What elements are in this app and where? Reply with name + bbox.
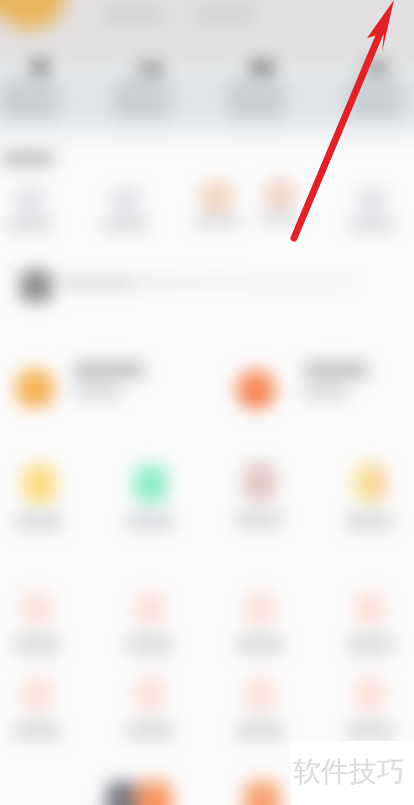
button[interactable]: Item bbox=[135, 590, 165, 625]
staticText: 软件技巧 bbox=[293, 754, 405, 789]
button[interactable]: App 4 bbox=[353, 464, 386, 502]
button[interactable]: Item bbox=[244, 780, 280, 805]
button[interactable]: App 1 bbox=[23, 464, 56, 502]
button[interactable]: App 3 bbox=[243, 462, 276, 500]
button[interactable]: Tab bbox=[2, 78, 58, 124]
button[interactable]: Item bbox=[22, 676, 52, 711]
button[interactable]: Promo 2 bbox=[236, 369, 276, 409]
button[interactable]: Promo 1 bbox=[15, 368, 55, 408]
button[interactable]: Item bbox=[106, 782, 138, 805]
button[interactable]: Item bbox=[135, 676, 165, 711]
button[interactable]: Item bbox=[355, 590, 385, 625]
button[interactable]: Action 2 bbox=[110, 185, 142, 215]
button[interactable]: App icon bbox=[20, 270, 52, 302]
button[interactable]: Action 4 bbox=[266, 179, 294, 207]
button[interactable]: Tab bbox=[346, 78, 402, 124]
button[interactable]: Item bbox=[355, 676, 385, 711]
button[interactable]: Action 3 bbox=[201, 181, 233, 211]
button[interactable]: Item bbox=[245, 590, 275, 625]
button[interactable]: Action 1 bbox=[14, 185, 46, 215]
button[interactable]: App 2 bbox=[134, 464, 167, 502]
button[interactable]: Item bbox=[245, 676, 275, 711]
button[interactable]: Item bbox=[136, 780, 172, 805]
button[interactable]: Action 5 bbox=[356, 185, 388, 215]
button[interactable]: Tab bbox=[114, 78, 170, 124]
button[interactable]: Tab bbox=[228, 78, 284, 124]
button[interactable]: Item bbox=[22, 590, 52, 625]
